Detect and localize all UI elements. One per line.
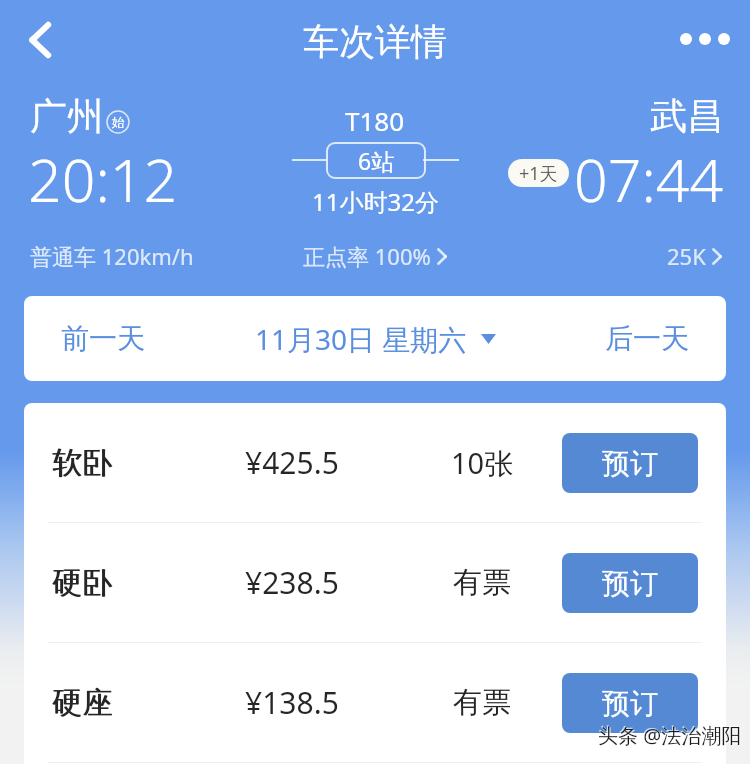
button[interactable]: 6站 xyxy=(327,143,425,178)
button[interactable]: 11月30日 星期六 xyxy=(182,296,568,381)
button[interactable]: 正点率 100% xyxy=(303,241,447,271)
staticText: ¥425.5 xyxy=(245,442,339,483)
staticText: 预订 xyxy=(602,566,658,601)
staticText: +1天 xyxy=(519,161,558,186)
staticText: 硬卧 xyxy=(52,564,112,602)
button[interactable]: 预订 xyxy=(562,433,698,493)
staticText: 07:44 xyxy=(574,139,724,219)
button[interactable]: 后一天 xyxy=(568,296,726,381)
staticText: 头条 @法治潮阳 xyxy=(598,722,742,749)
staticText: 11月30日 星期六 xyxy=(255,320,467,358)
button[interactable]: 预订 xyxy=(562,673,698,733)
button[interactable]: Back xyxy=(5,4,77,76)
staticText: 硬座 xyxy=(52,684,112,722)
staticText: 软卧 xyxy=(53,444,113,482)
staticText: ¥138.5 xyxy=(245,682,339,723)
button[interactable]: More options xyxy=(669,3,741,75)
staticText: 头条 @法治潮阳 xyxy=(597,721,741,748)
staticText: 武昌 xyxy=(650,93,724,140)
staticText: 普通车 120km/h xyxy=(30,241,194,271)
staticText: 有票 xyxy=(453,564,511,601)
button[interactable]: 前一天 xyxy=(24,296,182,381)
staticText: 有票 xyxy=(453,684,511,721)
staticText: 预订 xyxy=(602,686,658,721)
staticText: 硬座 xyxy=(53,684,113,722)
staticText: 20:12 xyxy=(28,139,178,219)
staticText: 11小时32分 xyxy=(312,185,439,218)
staticText: 软卧 xyxy=(52,444,112,482)
staticText: T180 xyxy=(345,103,405,138)
staticText: 前一天 xyxy=(61,321,145,356)
staticText: 车次详情 xyxy=(303,19,447,64)
staticText: 广州 xyxy=(30,93,104,140)
staticText: 正点率 100% xyxy=(303,241,431,271)
staticText: 硬卧 xyxy=(53,564,113,602)
staticText: 后一天 xyxy=(605,321,689,356)
staticText: ¥238.5 xyxy=(245,562,339,603)
staticText: 25K xyxy=(667,241,706,271)
staticText: 头条 @法治潮阳 xyxy=(599,723,743,750)
staticText: 始 xyxy=(112,114,125,130)
staticText: 预订 xyxy=(602,446,658,481)
button[interactable]: 25K xyxy=(667,241,722,271)
staticText: 6站 xyxy=(358,145,395,176)
staticText: 10张 xyxy=(451,443,514,483)
button[interactable]: 预订 xyxy=(562,553,698,613)
